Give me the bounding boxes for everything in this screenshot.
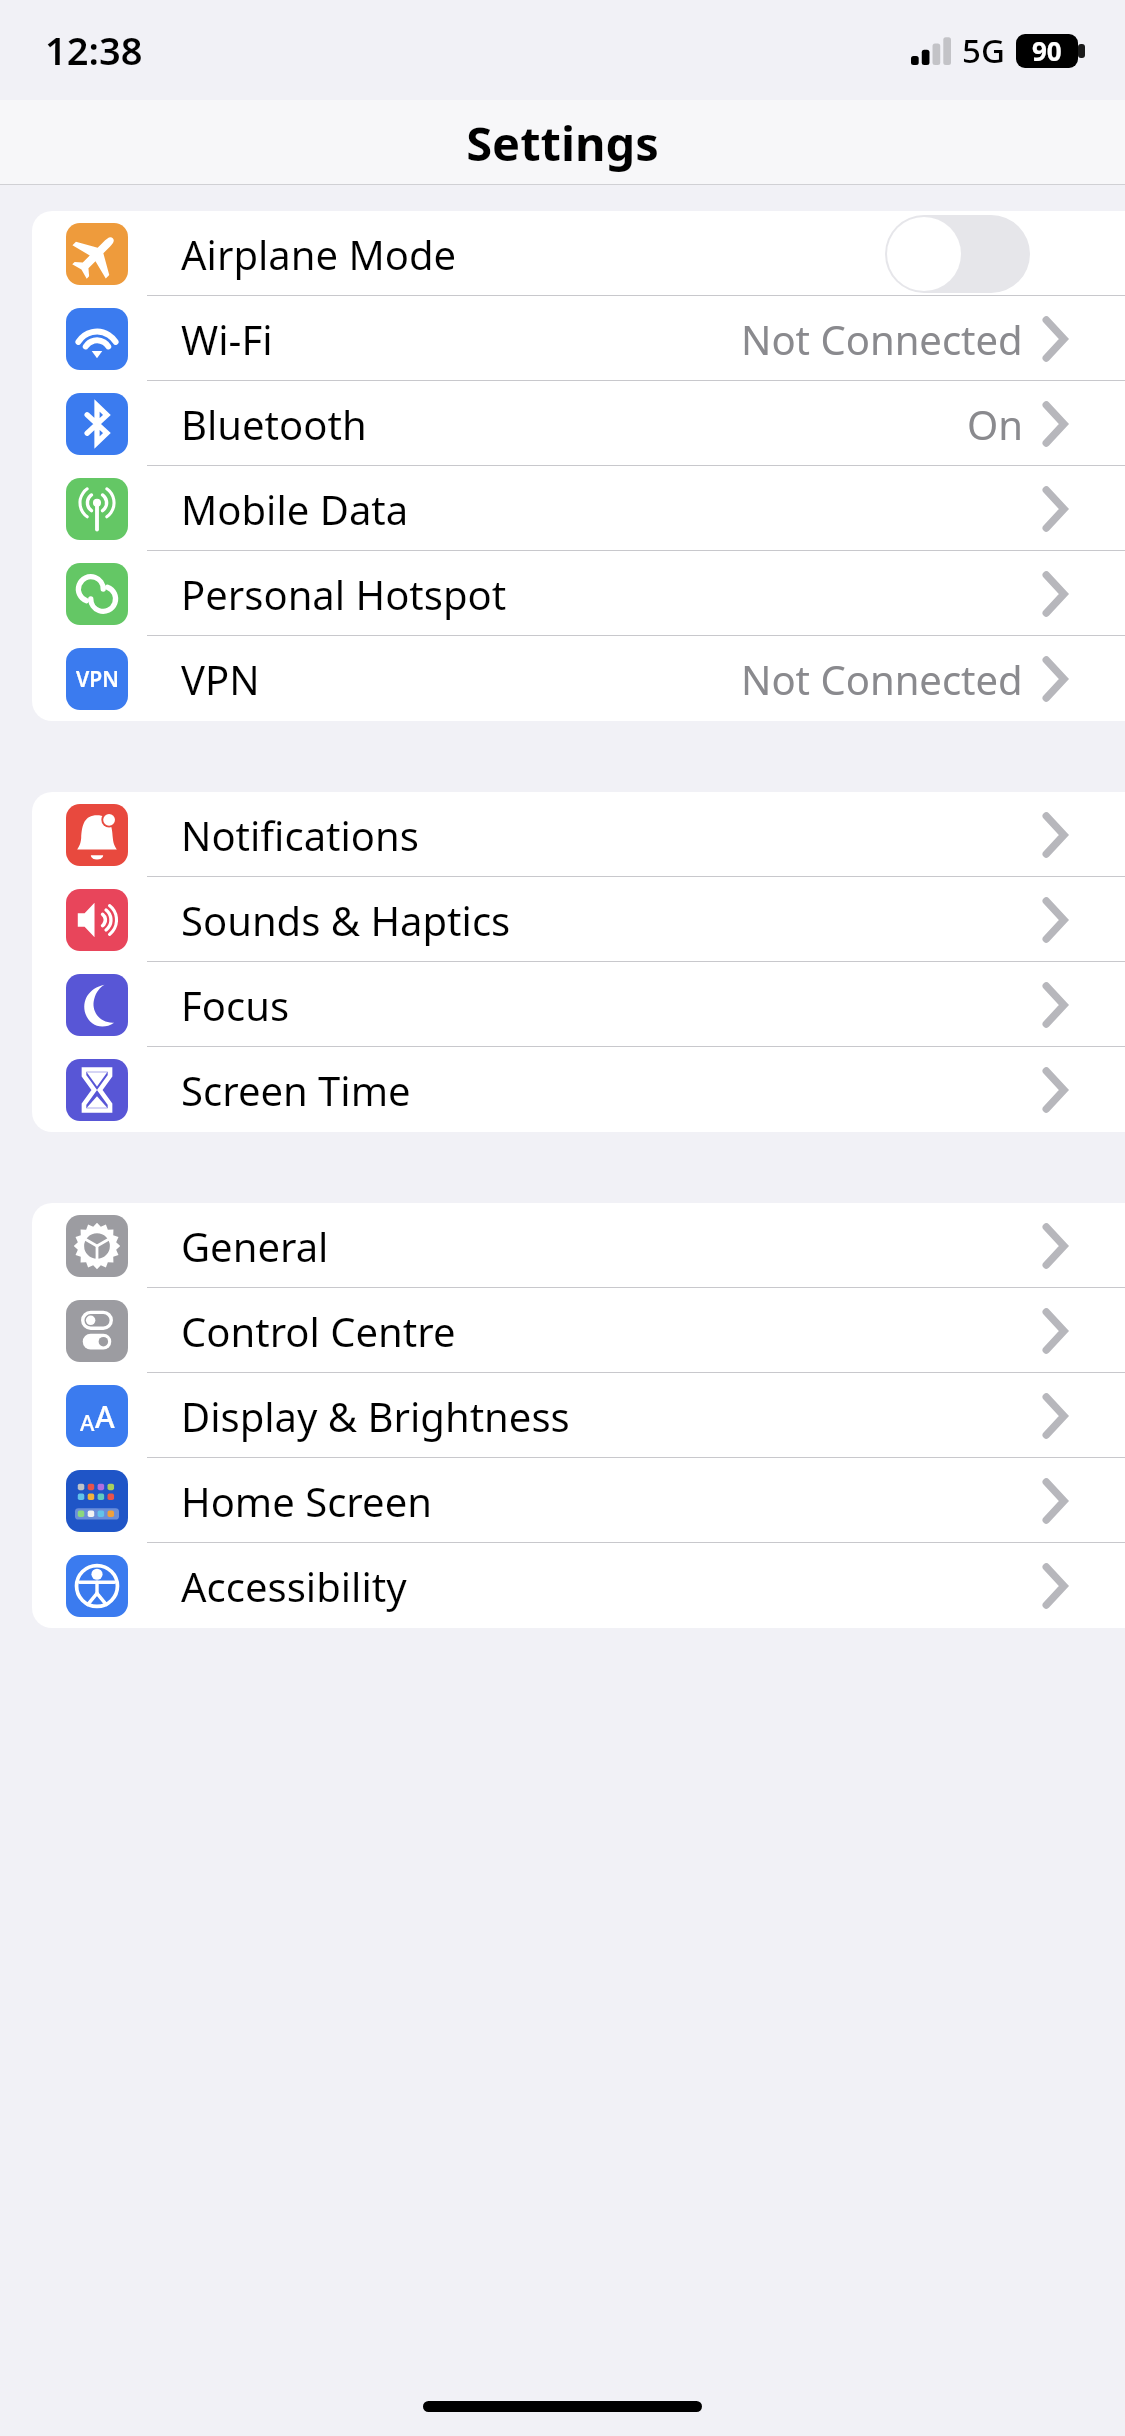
button[interactable]: Notifications bbox=[32, 792, 1125, 877]
other: Airplane Mode toggle bbox=[885, 215, 1030, 293]
button[interactable]: Mobile Data bbox=[32, 466, 1125, 551]
button[interactable]: A bbox=[32, 1373, 1125, 1458]
staticText: VPN bbox=[181, 652, 260, 706]
button[interactable]: VPN bbox=[32, 636, 1125, 721]
staticText: Sounds & Haptics bbox=[181, 893, 511, 947]
button[interactable]: Focus bbox=[32, 962, 1125, 1047]
staticText: A bbox=[95, 1396, 115, 1437]
button[interactable]: Accessibility bbox=[32, 1543, 1125, 1628]
staticText: 12:38 bbox=[45, 24, 143, 76]
staticText: Home Screen bbox=[181, 1474, 432, 1528]
button[interactable]: Airplane Mode bbox=[32, 211, 1125, 296]
staticText: Airplane Mode bbox=[181, 227, 457, 281]
staticText: Accessibility bbox=[181, 1559, 407, 1613]
staticText: General bbox=[181, 1219, 329, 1273]
staticText: Mobile Data bbox=[181, 482, 409, 536]
button[interactable]: Home Screen bbox=[32, 1458, 1125, 1543]
button[interactable]: Sounds & Haptics bbox=[32, 877, 1125, 962]
staticText: Bluetooth bbox=[181, 397, 367, 451]
staticText: VPN bbox=[76, 665, 119, 694]
staticText: Wi-Fi bbox=[181, 312, 273, 366]
staticText: Not Connected bbox=[741, 312, 1023, 366]
button[interactable]: General bbox=[32, 1203, 1125, 1288]
staticText: 5G bbox=[962, 28, 1005, 73]
staticText: Not Connected bbox=[741, 652, 1023, 706]
button[interactable]: Bluetooth bbox=[32, 381, 1125, 466]
staticText: Control Centre bbox=[181, 1304, 456, 1358]
staticText: Notifications bbox=[181, 808, 419, 862]
staticText: Focus bbox=[181, 978, 290, 1032]
button[interactable]: Control Centre bbox=[32, 1288, 1125, 1373]
button[interactable]: Personal Hotspot bbox=[32, 551, 1125, 636]
staticText: Settings bbox=[466, 111, 659, 175]
staticText: On bbox=[967, 397, 1023, 451]
staticText: 90 bbox=[1032, 33, 1062, 68]
button[interactable]: Wi-Fi bbox=[32, 296, 1125, 381]
button[interactable]: Screen Time bbox=[32, 1047, 1125, 1132]
staticText: Display & Brightness bbox=[181, 1389, 570, 1443]
staticText: Screen Time bbox=[181, 1063, 411, 1117]
staticText: A bbox=[80, 1407, 95, 1437]
staticText: Personal Hotspot bbox=[181, 567, 507, 621]
